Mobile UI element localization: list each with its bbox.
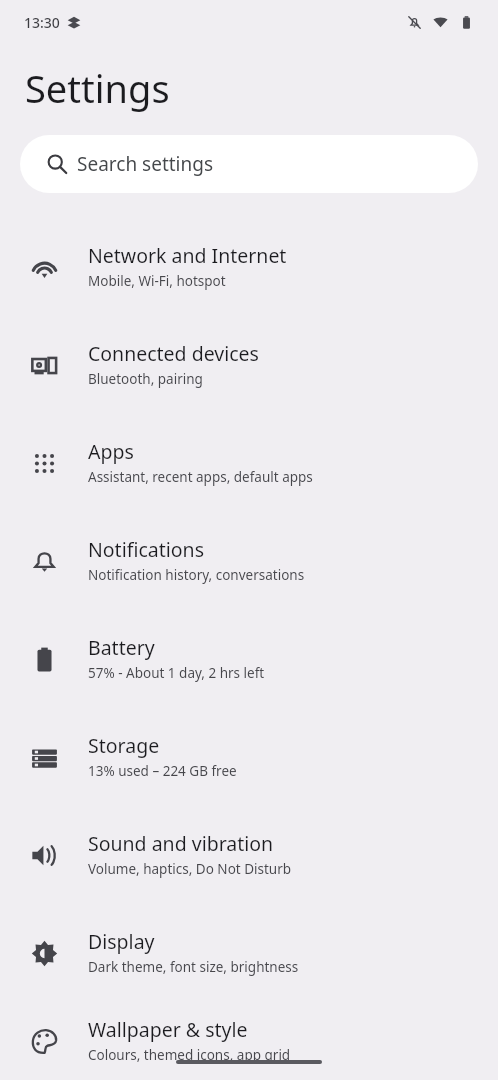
staticText: Connected devices bbox=[88, 340, 259, 367]
staticText: Assistant, recent apps, default apps bbox=[88, 468, 313, 486]
staticText: Dark theme, font size, brightness bbox=[88, 958, 299, 976]
staticText: Bluetooth, pairing bbox=[88, 370, 203, 388]
staticText: 13% used – 224 GB free bbox=[88, 762, 237, 780]
button[interactable]: Sound and vibration bbox=[0, 806, 498, 904]
staticText: Search settings bbox=[77, 151, 214, 177]
button[interactable]: Apps bbox=[0, 414, 498, 512]
staticText: Settings bbox=[25, 62, 170, 114]
button[interactable]: Search settings bbox=[20, 135, 478, 193]
button[interactable]: Network and Internet bbox=[0, 218, 498, 316]
staticText: Network and Internet bbox=[88, 242, 287, 269]
button[interactable]: Wallpaper & style bbox=[0, 1002, 498, 1080]
staticText: Storage bbox=[88, 732, 160, 759]
button[interactable]: Display bbox=[0, 904, 498, 1002]
button[interactable]: Notifications bbox=[0, 512, 498, 610]
staticText: Wallpaper & style bbox=[88, 1016, 248, 1043]
staticText: 13:30 bbox=[24, 13, 60, 32]
staticText: Mobile, Wi-Fi, hotspot bbox=[88, 272, 226, 290]
staticText: Notifications bbox=[88, 536, 204, 563]
button[interactable]: Storage bbox=[0, 708, 498, 806]
staticText: 57% - About 1 day, 2 hrs left bbox=[88, 664, 265, 682]
button[interactable]: Battery bbox=[0, 610, 498, 708]
staticText: Colours, themed icons, app grid bbox=[88, 1046, 291, 1064]
staticText: Apps bbox=[88, 438, 134, 465]
staticText: Notification history, conversations bbox=[88, 566, 305, 584]
staticText: Volume, haptics, Do Not Disturb bbox=[88, 860, 292, 878]
staticText: Sound and vibration bbox=[88, 830, 274, 857]
staticText: Battery bbox=[88, 634, 155, 661]
button[interactable]: Connected devices bbox=[0, 316, 498, 414]
staticText: Display bbox=[88, 928, 155, 955]
